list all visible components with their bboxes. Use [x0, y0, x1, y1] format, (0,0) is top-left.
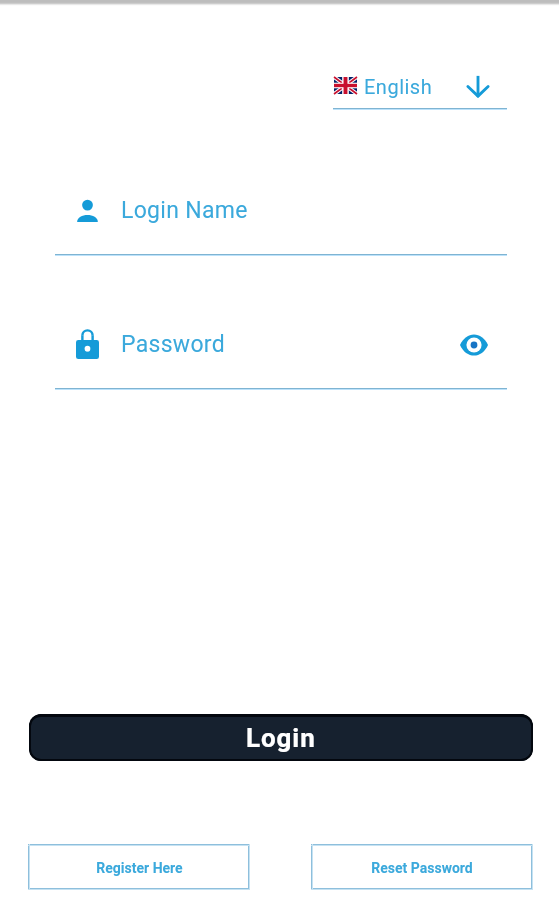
button[interactable]: Show password — [448, 319, 499, 370]
staticText: Login Name — [121, 197, 248, 224]
button[interactable]: Login Name — [55, 184, 507, 256]
staticText: English — [364, 75, 433, 98]
button[interactable]: Register Here — [28, 844, 250, 890]
staticText: Password — [121, 331, 225, 358]
other: Choose language — [467, 75, 489, 97]
button[interactable]: Password — [55, 318, 507, 390]
button[interactable]: English — [333, 68, 507, 110]
staticText: Register Here — [96, 860, 183, 876]
staticText: Login — [246, 723, 316, 753]
button[interactable]: Login — [29, 714, 533, 761]
button[interactable]: Reset Password — [311, 844, 533, 890]
staticText: Reset Password — [371, 860, 473, 876]
